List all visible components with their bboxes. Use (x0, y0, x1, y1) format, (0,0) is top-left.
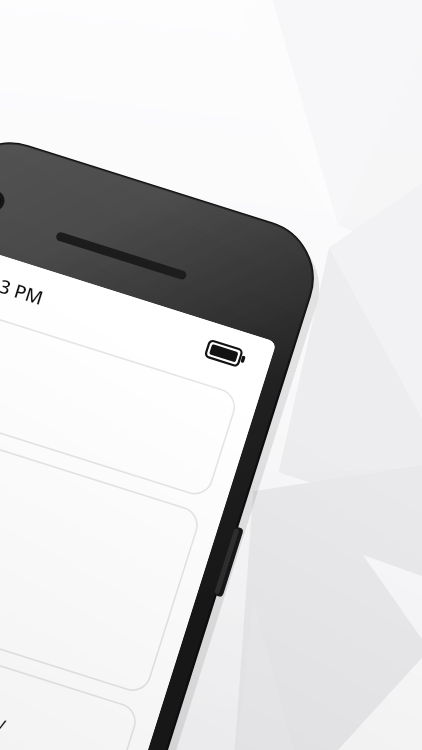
button[interactable]: App preview: tilted phone showing a list… (0, 0, 422, 750)
